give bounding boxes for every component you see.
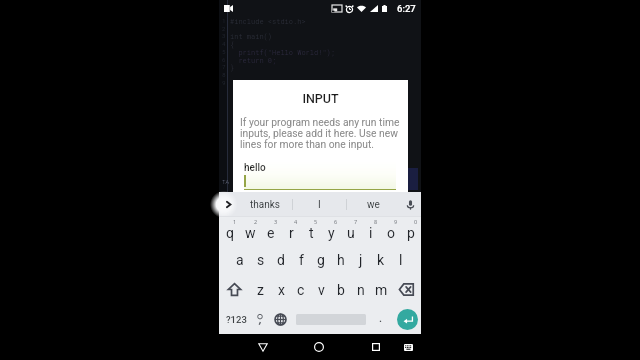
staticText: I: [318, 199, 321, 211]
staticText: o: [387, 225, 395, 241]
staticText: n: [357, 282, 365, 298]
button[interactable]: 9: [381, 217, 401, 245]
staticText: q: [226, 225, 234, 241]
button[interactable]: v: [311, 275, 331, 304]
button[interactable]: 4: [281, 217, 301, 245]
button[interactable]: z: [250, 275, 271, 304]
button[interactable]: 5: [301, 217, 321, 245]
button[interactable]: n: [351, 275, 371, 304]
button[interactable]: Recents: [365, 334, 387, 360]
staticText: t: [309, 225, 314, 241]
button[interactable]: thanks: [238, 192, 292, 217]
staticText: z: [257, 282, 264, 298]
staticText: thanks: [250, 199, 280, 211]
button[interactable]: 2: [240, 217, 261, 245]
button[interactable]: 8: [361, 217, 381, 245]
button[interactable]: ?123: [219, 304, 253, 334]
staticText: g: [317, 252, 325, 268]
staticText: 7: [222, 63, 226, 71]
staticText: r: [289, 225, 294, 241]
button[interactable]: Space: [295, 304, 367, 334]
button[interactable]: Backspace: [391, 275, 421, 304]
staticText: 9: [394, 218, 398, 225]
staticText: u: [347, 225, 355, 241]
button[interactable]: Change language: [266, 304, 295, 334]
staticText: printf("Hello World!");: [230, 48, 336, 57]
button[interactable]: Enter: [397, 309, 418, 330]
staticText: 4: [222, 40, 226, 48]
staticText: 3: [274, 218, 278, 225]
staticText: w: [245, 225, 256, 241]
staticText: x: [278, 282, 285, 298]
staticText: m: [375, 282, 388, 298]
button[interactable]: 1: [219, 217, 240, 245]
staticText: 2: [254, 218, 258, 225]
button[interactable]: g: [311, 245, 331, 275]
staticText: 6: [222, 56, 226, 64]
button[interactable]: x: [271, 275, 291, 304]
staticText: 5: [314, 218, 318, 225]
staticText: int main(): [230, 32, 273, 41]
staticText: h: [337, 252, 345, 268]
staticText: 6:27: [397, 3, 416, 14]
staticText: return 0;: [230, 56, 277, 65]
staticText: 3: [222, 32, 226, 40]
staticText: k: [377, 252, 385, 268]
button[interactable]: d: [271, 245, 291, 275]
staticText: 0: [414, 218, 418, 225]
staticText: y: [328, 225, 335, 241]
button[interactable]: b: [331, 275, 351, 304]
staticText: If your program needs any run time input…: [240, 116, 400, 150]
button[interactable]: .: [367, 304, 394, 334]
button[interactable]: h: [331, 245, 351, 275]
staticText: ?123: [226, 314, 247, 325]
staticText: v: [318, 282, 325, 298]
staticText: 1: [233, 218, 237, 225]
staticText: a: [236, 252, 244, 268]
staticText: p: [407, 225, 415, 241]
staticText: 8: [374, 218, 378, 225]
staticText: c: [297, 282, 305, 298]
staticText: hello: [244, 162, 266, 174]
button[interactable]: we: [347, 192, 400, 217]
staticText: 7: [354, 218, 358, 225]
staticText: e: [267, 225, 275, 241]
button[interactable]: f: [291, 245, 311, 275]
staticText: 2: [222, 25, 226, 33]
staticText: {: [230, 40, 235, 49]
staticText: INPUT: [233, 91, 408, 106]
staticText: d: [277, 252, 285, 268]
staticText: 1: [222, 17, 226, 25]
button[interactable]: 6: [321, 217, 341, 245]
button[interactable]: Switch keyboard: [398, 334, 419, 360]
button[interactable]: Voice input: [400, 192, 421, 217]
button[interactable]: Comma: [253, 304, 266, 334]
staticText: 5: [222, 48, 226, 56]
button[interactable]: s: [250, 245, 271, 275]
button[interactable]: Back: [252, 334, 274, 360]
button[interactable]: I: [293, 192, 346, 217]
button[interactable]: c: [291, 275, 311, 304]
staticText: #include <stdio.h>: [230, 17, 306, 26]
staticText: }: [230, 63, 235, 72]
button[interactable]: More suggestions: [219, 192, 238, 217]
button[interactable]: k: [371, 245, 391, 275]
staticText: 4: [294, 218, 298, 225]
button[interactable]: Home: [308, 334, 330, 360]
staticText: 6: [334, 218, 338, 225]
staticText: i: [369, 225, 373, 241]
button[interactable]: 7: [341, 217, 361, 245]
staticText: b: [337, 282, 345, 298]
button[interactable]: 3: [261, 217, 281, 245]
button[interactable]: a: [229, 245, 250, 275]
staticText: j: [359, 252, 363, 268]
button[interactable]: Shift: [219, 275, 250, 304]
staticText: we: [367, 199, 380, 211]
button[interactable]: j: [351, 245, 371, 275]
button[interactable]: 0: [401, 217, 421, 245]
button[interactable]: m: [371, 275, 391, 304]
staticText: l: [399, 252, 403, 268]
button[interactable]: l: [391, 245, 411, 275]
staticText: .: [379, 312, 383, 325]
staticText: TA: [222, 178, 230, 185]
